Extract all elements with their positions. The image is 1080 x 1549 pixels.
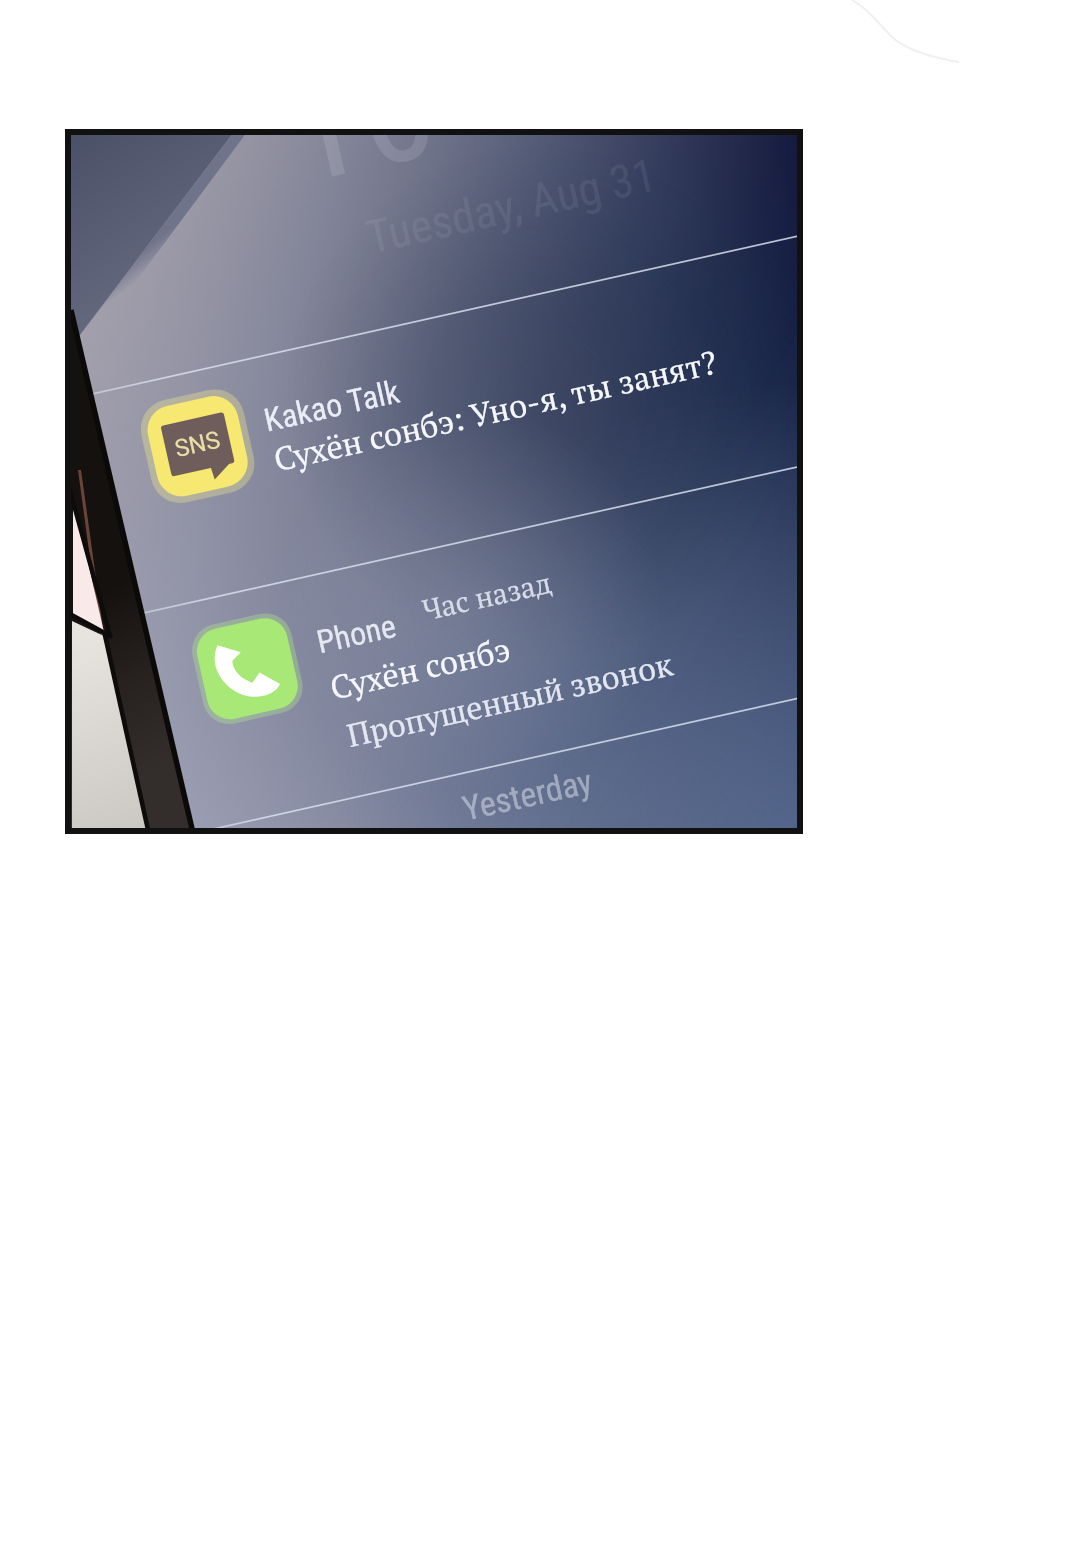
button[interactable]: Comic panel of a phone lock screen with … <box>0 0 1080 1549</box>
